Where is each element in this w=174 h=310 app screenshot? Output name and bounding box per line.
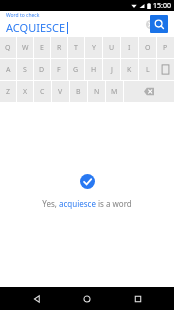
staticText: G [73,65,79,75]
button[interactable]: Back [23,287,51,310]
button[interactable]: R [51,37,67,58]
staticText: C [40,87,45,97]
button[interactable]: U [103,37,120,58]
staticText: T [74,43,78,53]
button[interactable]: Home [73,287,101,310]
button[interactable]: N [88,81,105,102]
staticText: U [109,43,115,53]
button[interactable]: Z [0,81,16,102]
button[interactable]: Recent apps [124,287,152,310]
staticText: O [145,43,151,53]
button[interactable]: A [0,59,16,80]
button[interactable]: Search [150,15,168,33]
button[interactable]: C [34,81,51,102]
staticText: H [91,65,97,75]
staticText: E [40,43,44,53]
button[interactable]: J [103,59,120,80]
button[interactable]: L [139,59,156,80]
staticText: F [57,65,61,75]
staticText: Yes, acquiesce is a word [42,198,132,209]
button[interactable]: H [85,59,102,80]
button[interactable]: V [52,81,69,102]
button[interactable]: O [139,37,156,58]
button[interactable]: P [157,37,174,58]
staticText: R [57,43,62,53]
button[interactable]: T [68,37,84,58]
button[interactable]: B [70,81,87,102]
staticText: P [163,43,168,53]
staticText: W [22,43,29,53]
button[interactable]: Q [0,37,16,58]
staticText: Word to check [6,12,40,19]
staticText: L [146,65,150,75]
staticText: ACQUIESCE [6,20,66,35]
button[interactable]: D [34,59,50,80]
button[interactable]: M [106,81,123,102]
button[interactable]: S [17,59,33,80]
staticText: D [39,65,45,75]
staticText: X [23,87,28,97]
staticText: I [128,43,131,53]
staticText: Z [6,87,11,97]
staticText: N [94,87,100,97]
staticText: S [23,65,27,75]
button[interactable]: Clear [141,15,159,33]
staticText: B [76,87,81,97]
button[interactable]: E [34,37,50,58]
staticText: A [6,65,11,75]
button[interactable]: W [17,37,33,58]
staticText: J [111,65,113,75]
button[interactable]: Key [157,59,174,80]
staticText: Q [5,43,11,53]
button[interactable]: K [121,59,138,80]
staticText: 15:00 [153,1,171,11]
staticText: Y [92,43,96,53]
button[interactable]: Y [85,37,102,58]
staticText: K [127,65,132,75]
button[interactable]: Key [124,81,174,102]
button[interactable]: I [121,37,138,58]
button[interactable]: X [17,81,33,102]
staticText: M [111,87,118,97]
button[interactable]: G [68,59,84,80]
staticText: V [58,87,63,97]
button[interactable]: F [51,59,67,80]
